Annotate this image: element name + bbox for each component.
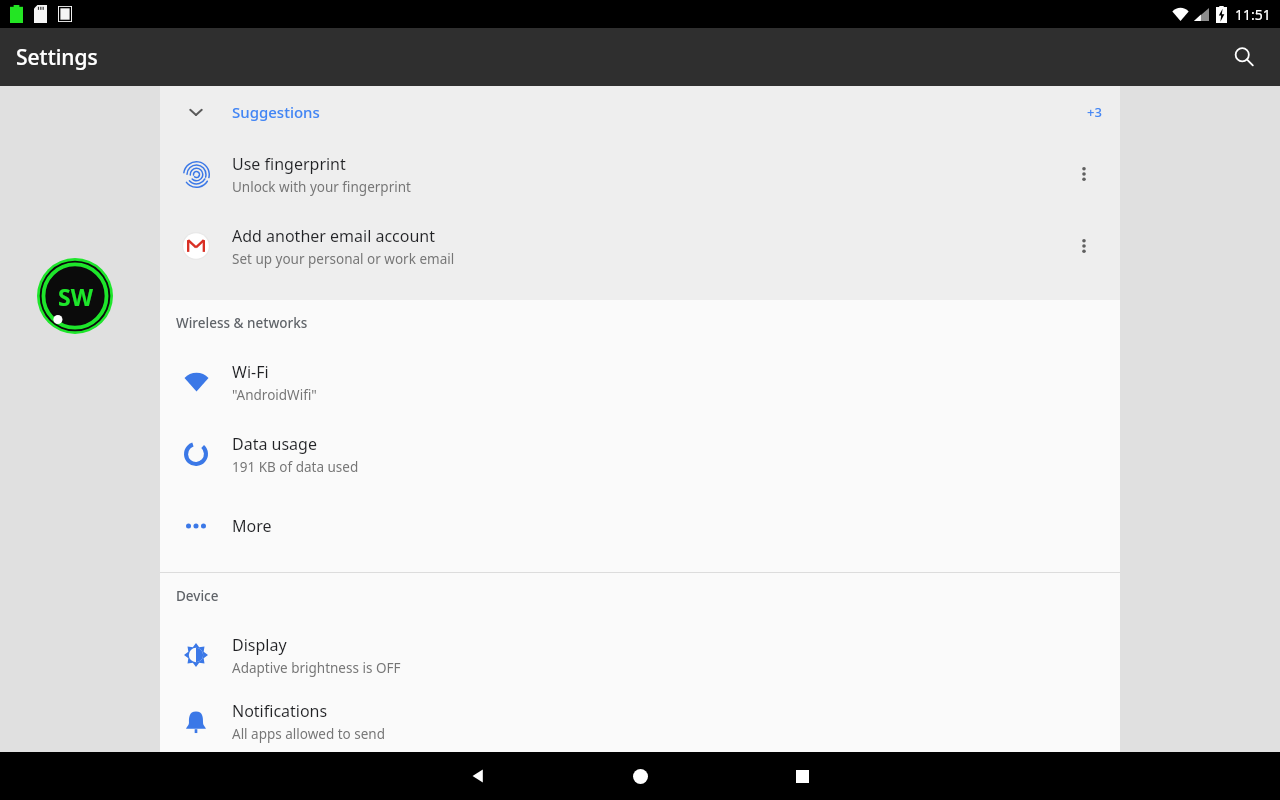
staticText: 11:51 [1235,5,1271,24]
button[interactable]: Use fingerprint [160,138,1120,210]
staticText: Data usage [232,433,317,455]
button[interactable]: Wi-Fi [160,346,1120,418]
staticText: Use fingerprint [232,153,346,175]
button[interactable]: Recent apps [774,752,830,800]
button[interactable]: Suggestions [160,86,1120,138]
button[interactable]: Data usage [160,418,1120,490]
staticText: 191 KB of data used [232,458,359,476]
button[interactable]: Search [1220,33,1268,81]
staticText: Adaptive brightness is OFF [232,659,401,677]
staticText: Wireless & networks [176,314,308,332]
staticText: SW [58,281,93,312]
staticText: All apps allowed to send [232,725,386,743]
button[interactable]: Home [612,752,668,800]
staticText: Display [232,634,287,656]
staticText: Device [176,587,219,605]
button[interactable]: More options [1060,222,1108,270]
button[interactable]: Back [450,752,506,800]
staticText: "AndroidWifi" [232,386,317,404]
button[interactable]: More options [1060,150,1108,198]
staticText: Notifications [232,700,328,722]
staticText: Settings [16,43,98,72]
staticText: Suggestions [232,102,320,122]
button[interactable]: Display [160,619,1120,691]
staticText: More [232,515,272,537]
staticText: Wi-Fi [232,361,269,383]
button[interactable]: More [160,490,1120,562]
staticText: Unlock with your fingerprint [232,178,411,196]
button[interactable]: Notifications [160,691,1120,752]
staticText: Set up your personal or work email [232,250,455,268]
button[interactable]: Add another email account [160,210,1120,282]
staticText: Add another email account [232,225,436,247]
staticText: +3 [1087,103,1102,121]
